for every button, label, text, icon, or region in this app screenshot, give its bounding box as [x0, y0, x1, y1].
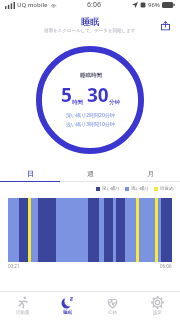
- staticText: 睡眠時間: [80, 72, 102, 79]
- staticText: 浅い眠り: [131, 186, 150, 192]
- staticText: 日: [27, 169, 34, 178]
- staticText: 30: [87, 82, 109, 108]
- staticText: 設定: [153, 310, 162, 316]
- button[interactable]: Share: [158, 18, 172, 32]
- staticText: 6:06: [87, 0, 101, 10]
- staticText: 目覚め: [160, 186, 174, 192]
- staticText: 活動量: [16, 310, 30, 316]
- staticText: 心拍: [108, 310, 117, 316]
- staticText: 00:21: [8, 263, 20, 269]
- button[interactable]: 活動量: [0, 292, 45, 320]
- staticText: UQ mobile: [17, 1, 48, 9]
- button[interactable]: 週: [60, 165, 120, 181]
- staticText: 週: [87, 169, 94, 178]
- button[interactable]: 設定: [135, 292, 180, 320]
- button[interactable]: 月: [120, 165, 180, 181]
- staticText: 06:06: [160, 263, 172, 269]
- staticText: 月: [147, 169, 154, 178]
- button[interactable]: 睡眠: [45, 292, 90, 320]
- staticText: 5: [61, 82, 72, 108]
- staticText: 分钟: [109, 99, 120, 106]
- staticText: 浅い眠り3時間10分钟: [66, 121, 115, 128]
- staticText: 96%: [148, 1, 160, 9]
- staticText: 深い眠り2時間20分钟: [66, 112, 115, 119]
- staticText: 画面をスクロールして、データを同期します: [44, 28, 136, 34]
- button[interactable]: 心拍: [90, 292, 135, 320]
- staticText: 睡眠: [81, 16, 99, 27]
- staticText: 深い眠り: [102, 186, 121, 192]
- staticText: 睡眠: [63, 310, 72, 316]
- button[interactable]: 日: [0, 165, 60, 181]
- staticText: 時間: [72, 99, 83, 106]
